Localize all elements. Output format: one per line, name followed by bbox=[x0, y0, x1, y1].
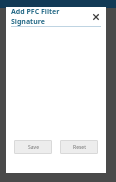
staticText: Reset bbox=[73, 144, 86, 151]
staticText: Save bbox=[28, 144, 39, 151]
button[interactable]: Reset bbox=[60, 140, 98, 154]
button[interactable]: Save bbox=[14, 140, 52, 154]
button[interactable]: Close bbox=[88, 9, 104, 25]
staticText: Add PFC Filter Signature bbox=[11, 7, 88, 26]
